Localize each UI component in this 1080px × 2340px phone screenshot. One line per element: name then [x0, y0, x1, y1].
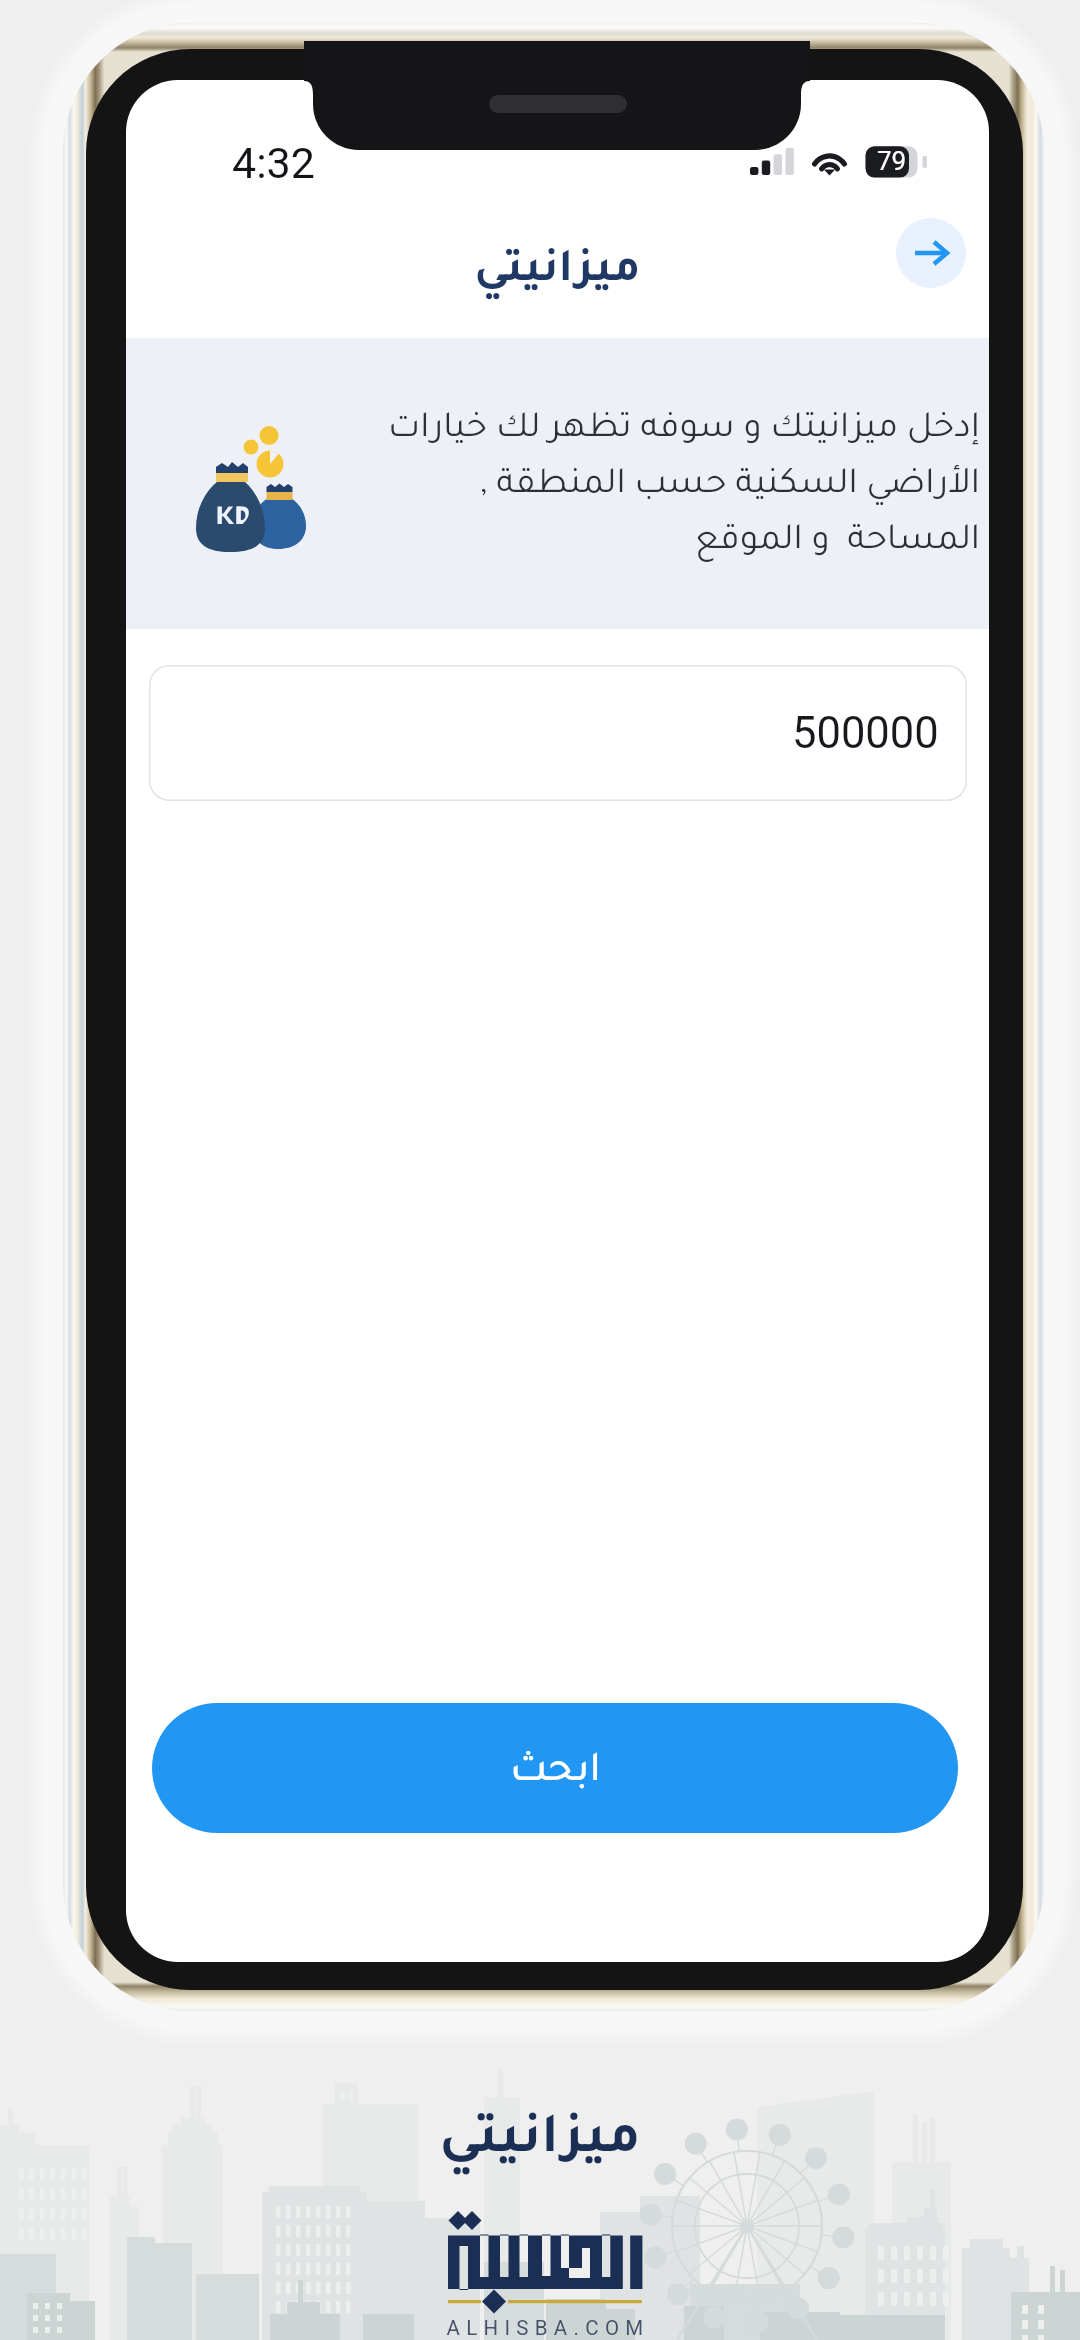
staticText: ابحث	[510, 1753, 601, 1795]
staticText: 79	[877, 146, 907, 176]
button[interactable]: ابحث	[152, 1703, 958, 1833]
staticText: ALHISBA.COM	[8, 2316, 1080, 2340]
button[interactable]: Next	[896, 218, 966, 288]
staticText: ميزانيتي	[0, 2114, 1080, 2171]
staticText: ميزانيتي	[126, 250, 989, 297]
staticText: 4:32	[232, 138, 315, 188]
button[interactable]: 500000	[149, 665, 967, 801]
staticText: إدخل ميزانيتك و سوفه تظهر لك خيارات الأر…	[380, 412, 980, 561]
staticText: 500000	[792, 708, 939, 759]
